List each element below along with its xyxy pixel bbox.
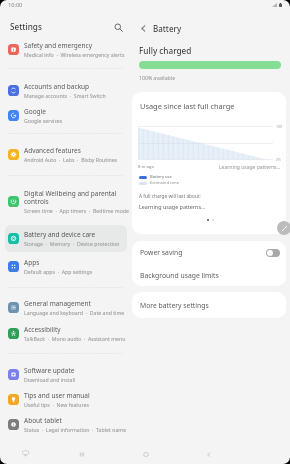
button[interactable]: Google	[5, 102, 134, 129]
staticText: Tips and user manual	[24, 391, 90, 400]
staticText: Usage since last full charge	[140, 101, 235, 111]
staticText: Fully charged	[139, 45, 192, 56]
button[interactable]: Back	[199, 444, 219, 464]
staticText: Battery	[153, 23, 182, 34]
staticText: Apps	[24, 258, 40, 267]
staticText: Language and keyboard · Date and time	[24, 309, 125, 316]
staticText: Status · Legal information · Tablet name	[24, 426, 127, 433]
staticText: TalkBack · Mono audio · Assistant menu	[24, 335, 126, 342]
button[interactable]: Safety and emergency	[5, 36, 134, 63]
staticText: About tablet	[24, 416, 62, 425]
staticText: Power saving	[140, 248, 183, 257]
button[interactable]: Accounts and backup	[5, 77, 134, 104]
button[interactable]: About tablet	[5, 411, 134, 438]
button[interactable]: Power saving	[132, 241, 286, 264]
staticText: Accessibility	[24, 325, 61, 334]
staticText: Battery and device care	[24, 230, 96, 239]
staticText: Default apps · App settings	[24, 268, 93, 275]
button[interactable]: Advanced features	[5, 141, 134, 168]
staticText: Google	[24, 107, 46, 116]
staticText: Settings	[10, 21, 42, 32]
staticText: General management	[24, 299, 91, 308]
staticText: Accounts and backup	[24, 82, 90, 91]
staticText: 10:00	[8, 1, 23, 9]
staticText: Medical info · Wireless emergency alerts	[24, 51, 125, 58]
button[interactable]: Accessibility	[5, 320, 134, 347]
staticText: Advanced features	[24, 146, 81, 155]
button[interactable]: Software update	[5, 361, 134, 388]
staticText: Software update	[24, 366, 75, 375]
staticText: Estimated time	[150, 180, 179, 186]
button[interactable]: Battery	[136, 20, 196, 36]
button[interactable]: Recents	[72, 444, 92, 464]
staticText: Safety and emergency	[24, 41, 92, 50]
staticText: Download and install	[24, 376, 76, 383]
staticText: 100	[276, 124, 283, 129]
button[interactable]: Home	[136, 444, 156, 464]
staticText: Background usage limits	[140, 271, 219, 280]
button[interactable]: Edit	[277, 221, 290, 235]
staticText: Android Auto · Labs · Bixby Routines	[24, 156, 118, 163]
button[interactable]: Digital Wellbeing and parental controls	[5, 185, 134, 217]
staticText: Storage · Memory · Device protection	[24, 240, 120, 247]
staticText: 8 m ago	[138, 164, 154, 170]
button[interactable]: Hide keyboard	[19, 447, 31, 459]
staticText: Manage accounts · Smart Switch	[24, 92, 106, 99]
staticText: Battery use	[150, 174, 172, 180]
button[interactable]: More battery settings	[132, 292, 286, 318]
button[interactable]: Apps	[5, 253, 134, 280]
staticText: Digital Wellbeing and parental controls	[24, 189, 132, 206]
staticText: A full charge will last about:	[139, 193, 201, 200]
staticText: Useful tips · New features	[24, 401, 89, 408]
button[interactable]: Background usage limits	[132, 264, 286, 286]
staticText: 0%	[276, 157, 282, 162]
staticText: Google services	[24, 117, 63, 124]
button[interactable]: General management	[5, 294, 134, 321]
staticText: Screen time · App timers · Bedtime mode	[24, 207, 129, 214]
button[interactable]: Search	[110, 19, 126, 35]
staticText: More battery settings	[140, 301, 209, 310]
staticText: Learning usage patterns…	[219, 164, 281, 171]
button[interactable]: Tips and user manual	[5, 386, 134, 413]
button[interactable]: Battery and device care	[5, 225, 134, 252]
staticText: 100% available	[139, 74, 176, 81]
staticText: Learning usage patterns…	[139, 203, 206, 210]
